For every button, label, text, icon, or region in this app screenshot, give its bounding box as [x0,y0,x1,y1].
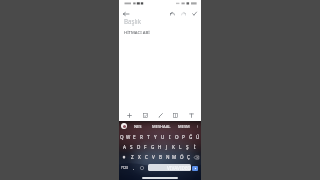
staticText: , [133,165,135,170]
staticText: H [158,144,162,150]
staticText: NES [134,124,142,129]
button[interactable]: MESHAAL [148,121,174,131]
staticText: MESHAAL [152,124,171,129]
button[interactable]: Draw [155,110,165,120]
staticText: Z [131,154,134,160]
button[interactable]: Emoji [138,162,146,173]
button[interactable]: A [121,142,128,152]
staticText: R [140,134,143,140]
button[interactable]: M [171,152,178,162]
staticText: X [138,154,141,160]
staticText: I [169,134,171,140]
staticText: J [166,144,168,150]
button[interactable]: Shift [119,152,129,162]
button[interactable]: V [150,152,157,162]
staticText: Ç [187,154,190,160]
staticText: S [130,144,133,150]
staticText: B [159,154,162,160]
button[interactable]: Text format [186,110,196,120]
button[interactable]: Ü [194,131,201,142]
button[interactable]: X [136,152,143,162]
staticText: Ö [180,154,184,160]
button[interactable]: Ğ [187,131,194,142]
button[interactable]: Ç [185,152,192,162]
button[interactable]: , [130,162,138,173]
button[interactable]: Home [142,177,178,179]
button[interactable]: Done [189,8,199,18]
staticText: Başlık [124,17,141,25]
button[interactable]: H [156,142,163,152]
button[interactable]: Image [170,110,180,120]
staticText: U [161,134,165,140]
button[interactable]: G [149,142,156,152]
staticText: MESM [178,124,190,129]
button[interactable]: Redo [178,8,188,18]
staticText: Y [154,134,157,140]
button[interactable]: K [170,142,177,152]
staticText: W [126,134,131,140]
button[interactable]: MESM [174,121,194,131]
staticText: VIVAVIDEO [167,165,191,171]
staticText: O [175,134,179,140]
staticText: G [151,144,155,150]
button[interactable]: Q [119,131,125,142]
staticText: D [137,144,141,150]
staticText: M [172,154,177,160]
staticText: C [145,154,148,160]
button[interactable]: ?123 [119,162,130,173]
button[interactable]: Z [129,152,136,162]
button[interactable]: E [131,131,138,142]
button[interactable]: I [166,131,173,142]
button[interactable]: U [159,131,166,142]
staticText: K [172,144,175,150]
staticText: E [133,134,136,140]
button[interactable]: More [194,121,200,131]
button[interactable]: Checklist [140,110,150,120]
staticText: L [179,144,182,150]
staticText: Ü [196,134,200,140]
button[interactable]: N [164,152,171,162]
staticText: İ [194,144,196,150]
button[interactable]: Add [124,110,134,120]
button[interactable]: L [177,142,184,152]
staticText: T [147,134,150,140]
staticText: HİTMACI ABİ [124,30,150,36]
staticText: Ğ [189,134,193,140]
button[interactable]: O [173,131,180,142]
staticText: N [166,154,170,160]
staticText: ?123 [121,166,128,170]
staticText: Q [120,134,124,140]
staticText: P [182,134,185,140]
staticText: A [123,144,126,150]
button[interactable]: W [125,131,131,142]
button[interactable]: D [135,142,142,152]
button[interactable]: J [163,142,170,152]
button[interactable]: NES [127,121,148,131]
button[interactable]: İ [191,142,198,152]
button[interactable]: Space [148,164,191,171]
staticText: Ş [186,144,189,150]
button[interactable]: S [128,142,135,152]
button[interactable]: C [143,152,150,162]
button[interactable]: Ş [184,142,191,152]
button[interactable]: F [142,142,149,152]
button[interactable]: T [145,131,152,142]
button[interactable]: Back [120,8,131,19]
button[interactable]: Google [121,123,127,129]
button[interactable]: P [180,131,187,142]
staticText: V [152,154,155,160]
button[interactable]: Undo [167,8,177,18]
button[interactable]: R [138,131,145,142]
staticText: F [144,144,147,150]
button[interactable]: Backspace [192,152,201,162]
button[interactable]: B [157,152,164,162]
button[interactable]: Ö [178,152,185,162]
button[interactable]: Y [152,131,159,142]
